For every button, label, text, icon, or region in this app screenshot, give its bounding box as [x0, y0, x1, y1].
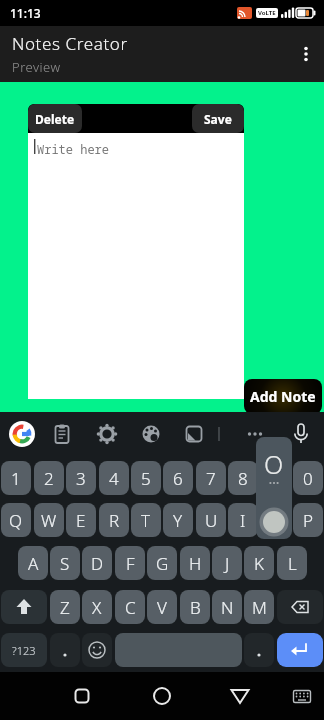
staticText: 6	[173, 467, 183, 490]
staticText: O	[264, 447, 284, 479]
staticText: VoLTE	[258, 9, 276, 17]
button[interactable]: L	[277, 546, 307, 580]
staticText: U	[205, 509, 218, 532]
button[interactable]	[82, 633, 112, 667]
button[interactable]: A	[18, 546, 48, 580]
button[interactable]	[68, 682, 96, 710]
button[interactable]: N	[212, 590, 242, 624]
button[interactable]: 5	[131, 461, 161, 495]
button[interactable]: W	[34, 503, 64, 537]
button[interactable]	[277, 590, 323, 624]
button[interactable]: 8	[228, 461, 258, 495]
button[interactable]: K	[244, 546, 274, 580]
staticText: 1	[11, 467, 21, 490]
staticText: 5	[141, 467, 151, 490]
button[interactable]	[93, 420, 121, 448]
staticText: 7	[206, 467, 216, 490]
button[interactable]: S	[50, 546, 80, 580]
staticText: Add Note	[250, 387, 316, 406]
staticText: 3	[76, 467, 86, 490]
button[interactable]: 2	[34, 461, 64, 495]
staticText: D	[91, 552, 104, 575]
button[interactable]: Z	[50, 590, 80, 624]
staticText: R	[109, 509, 120, 532]
staticText: E	[76, 509, 86, 532]
button[interactable]: F	[115, 546, 145, 580]
staticText: Save	[204, 111, 232, 127]
staticText: S	[60, 552, 70, 575]
button[interactable]: G	[147, 546, 177, 580]
staticText: Preview	[12, 58, 61, 76]
button[interactable]: 3	[66, 461, 96, 495]
button[interactable]	[1, 590, 47, 624]
button[interactable]: X	[82, 590, 112, 624]
button[interactable]: Delete	[28, 104, 82, 133]
button[interactable]: 7	[196, 461, 226, 495]
staticText: P	[303, 509, 314, 532]
button[interactable]: 1	[1, 461, 31, 495]
button[interactable]: V	[147, 590, 177, 624]
button[interactable]	[137, 420, 165, 448]
button[interactable]	[244, 633, 274, 667]
button[interactable]: I	[228, 503, 258, 537]
staticText: L	[288, 552, 297, 575]
button[interactable]	[180, 420, 208, 448]
staticText: B	[190, 596, 201, 619]
button[interactable]: M	[244, 590, 274, 624]
button[interactable]: ?123	[1, 633, 47, 667]
staticText: M	[252, 596, 267, 619]
staticText: J	[225, 552, 230, 575]
button[interactable]	[50, 633, 80, 667]
button[interactable]: R	[99, 503, 129, 537]
staticText: 8	[238, 467, 248, 490]
staticText: K	[254, 552, 264, 575]
staticText: N	[221, 596, 234, 619]
staticText: F	[126, 552, 135, 575]
staticText: W	[41, 509, 57, 532]
staticText: 0	[303, 467, 313, 490]
staticText: Write here	[37, 141, 110, 157]
staticText: 11:13	[10, 5, 41, 21]
staticText: C	[125, 596, 136, 619]
button[interactable]: T	[131, 503, 161, 537]
staticText: V	[157, 596, 167, 619]
staticText: X	[92, 596, 102, 619]
button[interactable]: B	[180, 590, 210, 624]
staticText: Delete	[35, 111, 75, 127]
staticText: 4	[109, 467, 119, 490]
button[interactable]: U	[196, 503, 226, 537]
button[interactable]: J	[212, 546, 242, 580]
button[interactable]: Q	[1, 503, 31, 537]
button[interactable]: 0	[293, 461, 323, 495]
button[interactable]: H	[180, 546, 210, 580]
button[interactable]: Y	[163, 503, 193, 537]
button[interactable]: 6	[163, 461, 193, 495]
staticText: A	[28, 552, 39, 575]
button[interactable]	[287, 420, 315, 448]
button[interactable]: Save	[192, 104, 244, 133]
staticText: Notes Creator	[12, 32, 128, 55]
button[interactable]	[288, 682, 316, 710]
staticText: 2	[44, 467, 54, 490]
staticText: G	[156, 552, 169, 575]
button[interactable]	[48, 420, 76, 448]
button[interactable]	[8, 420, 36, 448]
button[interactable]: P	[293, 503, 323, 537]
button[interactable]	[226, 682, 254, 710]
button[interactable]	[115, 633, 242, 667]
button[interactable]	[277, 633, 323, 667]
staticText: T	[141, 509, 151, 532]
staticText: Q	[9, 509, 23, 532]
button[interactable]	[292, 40, 320, 68]
staticText: I	[240, 509, 246, 532]
button[interactable]	[241, 420, 269, 448]
button[interactable]: C	[115, 590, 145, 624]
button[interactable]: E	[66, 503, 96, 537]
button[interactable]: Add Note	[244, 379, 322, 414]
button[interactable]: D	[82, 546, 112, 580]
staticText: H	[189, 552, 202, 575]
button[interactable]	[148, 682, 176, 710]
staticText: Z	[60, 596, 70, 619]
button[interactable]: 4	[99, 461, 129, 495]
staticText: ?123	[12, 643, 36, 658]
